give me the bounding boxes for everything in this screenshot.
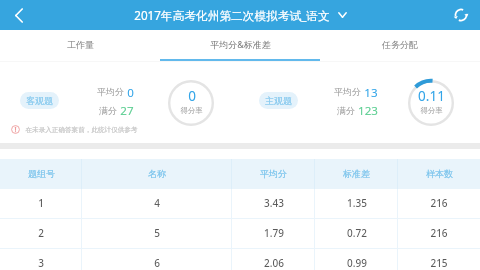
button[interactable]: 3 (0, 249, 480, 270)
staticText: 216 (430, 226, 448, 240)
button[interactable]: 2 (0, 219, 480, 249)
staticText: 平均分&标准差 (210, 38, 271, 50)
staticText: 1.79 (264, 226, 284, 240)
staticText: 标准差 (343, 168, 370, 179)
button[interactable]: 题组号 (0, 159, 82, 189)
staticText: 满分 (337, 105, 355, 116)
staticText: 工作量 (67, 39, 94, 50)
button[interactable]: 客观题 (20, 92, 59, 109)
staticText: 平均分 (334, 86, 361, 97)
staticText: 4 (154, 196, 160, 210)
staticText: 0.72 (347, 226, 367, 240)
staticText: 2017年高考化州第二次模拟考试_语文 (134, 7, 330, 23)
staticText: 主观题 (265, 95, 292, 106)
staticText: 名称 (148, 168, 166, 179)
button[interactable]: 工作量 (0, 30, 160, 62)
button[interactable]: 平均分&标准差 (160, 30, 320, 62)
staticText: 得分率 (420, 106, 443, 115)
staticText: 在未录入正确答案前，此统计仅供参考 (25, 126, 138, 134)
button[interactable]: 样本数 (398, 159, 480, 189)
staticText: 满分 (99, 105, 117, 116)
staticText: 2.06 (264, 256, 284, 270)
staticText: 1.35 (347, 196, 367, 210)
staticText: 216 (430, 196, 448, 210)
button[interactable]: 1 (0, 189, 480, 219)
staticText: 0 (127, 85, 134, 101)
button[interactable]: 主观题 (259, 92, 298, 109)
staticText: 2 (38, 226, 44, 240)
staticText: 得分率 (180, 106, 203, 115)
staticText: 3 (38, 256, 44, 270)
staticText: 平均分 (260, 168, 287, 179)
button[interactable]: 平均分 (232, 159, 315, 189)
button[interactable]: 名称 (82, 159, 232, 189)
staticText: 样本数 (426, 168, 453, 179)
staticText: 13 (364, 85, 378, 101)
staticText: 1 (38, 196, 44, 210)
button[interactable]: Refresh (442, 0, 480, 30)
staticText: 215 (430, 256, 448, 270)
staticText: 题组号 (28, 168, 55, 179)
staticText: 0.99 (347, 256, 367, 270)
staticText: 6 (154, 256, 160, 270)
button[interactable]: 标准差 (315, 159, 398, 189)
staticText: 27 (120, 103, 134, 119)
staticText: 0 (188, 87, 196, 105)
staticText: 客观题 (26, 95, 53, 106)
staticText: 3.43 (264, 196, 284, 210)
staticText: 5 (154, 226, 160, 240)
staticText: 任务分配 (382, 39, 418, 50)
button[interactable]: 任务分配 (320, 30, 480, 62)
button[interactable]: 2017年高考化州第二次模拟考试_语文 (134, 7, 347, 23)
staticText: 123 (358, 103, 378, 119)
button[interactable]: Back (0, 0, 38, 30)
staticText: 平均分 (97, 86, 124, 97)
staticText: 0.11 (418, 87, 445, 105)
